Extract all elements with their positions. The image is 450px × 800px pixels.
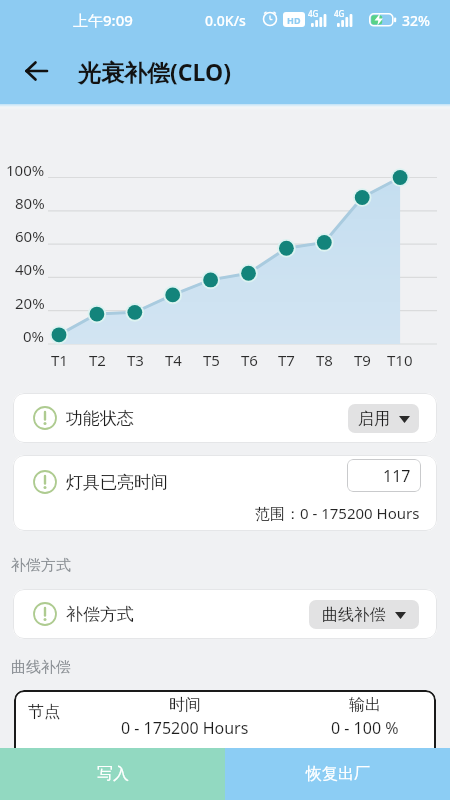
staticText: 写入 (97, 764, 129, 784)
staticText: 输出 (349, 695, 381, 715)
staticText: 曲线补偿 (322, 605, 386, 625)
staticText: 80% (15, 193, 45, 213)
staticText: 时间 (169, 695, 201, 715)
staticText: 上午9:09 (73, 10, 133, 30)
button[interactable]: 恢复出厂 (225, 748, 450, 800)
staticText: T10 (387, 350, 413, 370)
staticText: 60% (15, 226, 45, 246)
staticText: 32% (402, 11, 430, 30)
staticText: 4G (334, 8, 345, 19)
staticText: 恢复出厂 (306, 764, 370, 784)
staticText: 节点 (28, 702, 60, 722)
button[interactable] (25, 60, 48, 82)
button[interactable]: 功能状态 (13, 393, 437, 443)
staticText: 启用 (358, 409, 390, 429)
staticText: 100% (6, 160, 45, 180)
staticText: HD (287, 14, 301, 26)
staticText: 4G (308, 8, 319, 19)
staticText: 补偿方式 (11, 556, 71, 575)
staticText: T9 (354, 350, 371, 370)
staticText: 曲线补偿 (11, 658, 71, 677)
staticText: 补偿方式 (66, 604, 134, 625)
staticText: 范围：0 - 175200 Hours (255, 503, 420, 523)
staticText: T4 (165, 350, 182, 370)
staticText: T5 (203, 350, 220, 370)
staticText: T6 (241, 350, 258, 370)
staticText: 灯具已亮时间 (66, 472, 168, 493)
staticText: 光衰补偿(CLO) (78, 56, 231, 87)
button[interactable]: 启用 (348, 404, 419, 433)
button[interactable]: 补偿方式 (13, 589, 437, 639)
staticText: 0 - 175200 Hours (121, 717, 249, 739)
staticText: 功能状态 (66, 408, 134, 429)
staticText: 0 - 100 % (331, 717, 399, 739)
button[interactable]: 写入 (0, 748, 225, 800)
button[interactable]: 曲线补偿 (309, 600, 419, 629)
staticText: 40% (15, 259, 45, 279)
staticText: T1 (51, 350, 68, 370)
staticText: T8 (316, 350, 333, 370)
staticText: 117 (383, 465, 411, 487)
staticText: T2 (89, 350, 106, 370)
staticText: 0.0K/s (205, 11, 246, 30)
staticText: 0% (23, 326, 45, 346)
staticText: T3 (127, 350, 144, 370)
staticText: 20% (15, 293, 45, 313)
staticText: T7 (278, 350, 295, 370)
button[interactable]: 灯具已亮时间 (13, 455, 437, 531)
